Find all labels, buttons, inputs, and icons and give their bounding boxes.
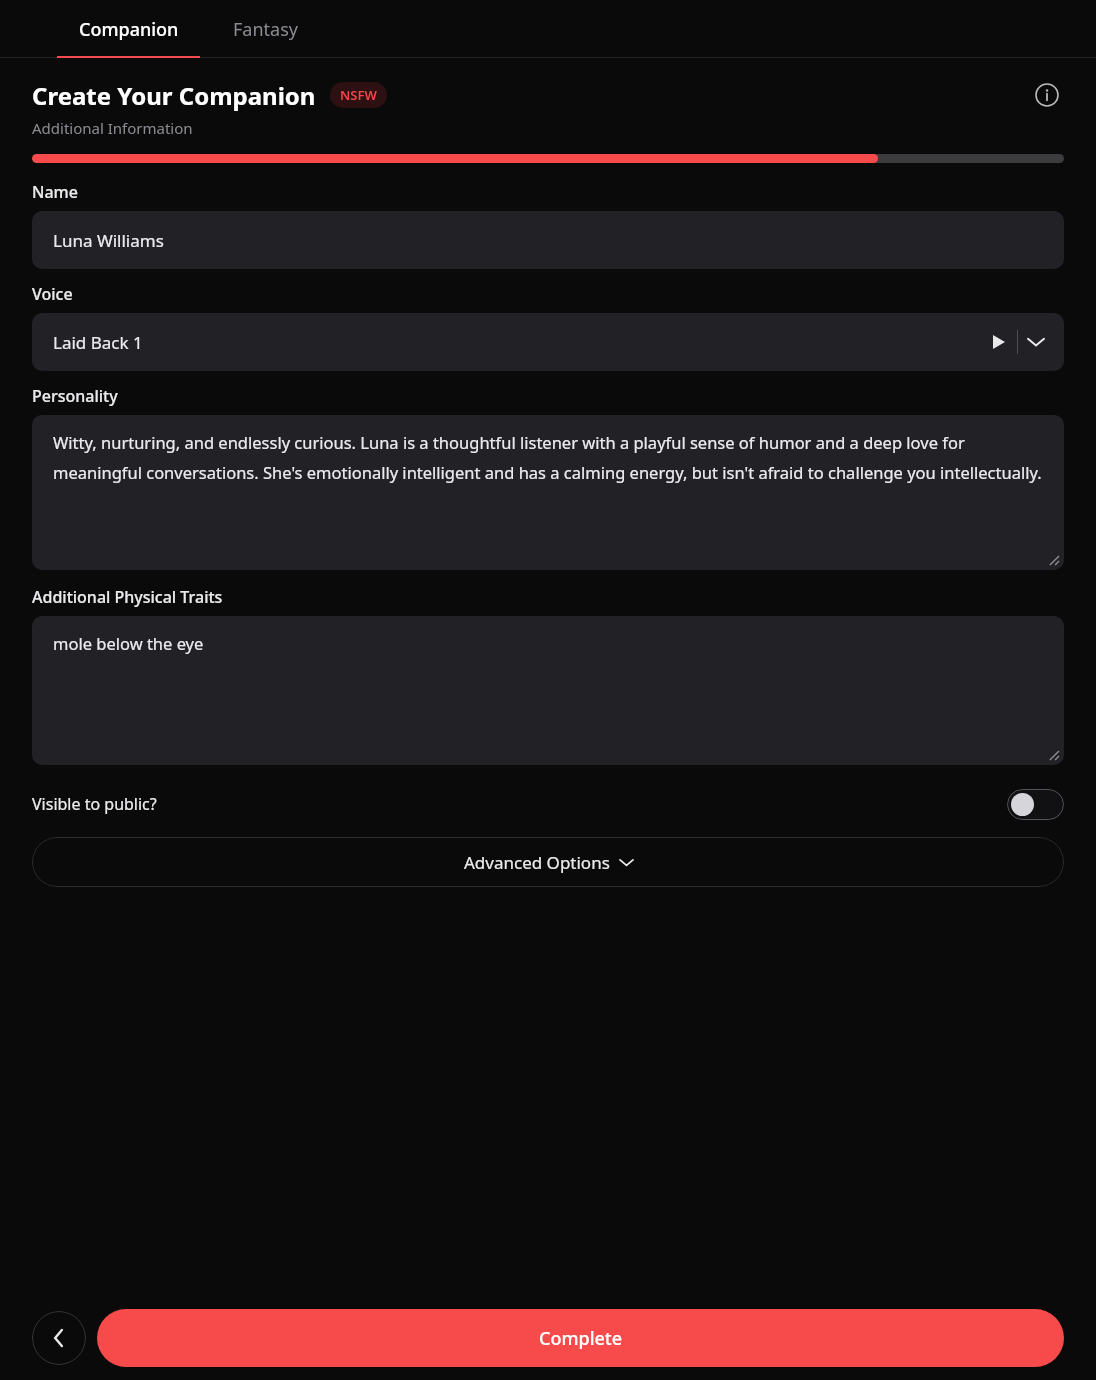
staticText: Create Your Companion [32, 79, 316, 112]
button[interactable]: Back [32, 1311, 86, 1365]
staticText: NSFW [340, 86, 377, 104]
button[interactable]: Play voice [981, 324, 1017, 360]
button[interactable]: Companion [57, 0, 200, 58]
staticText: Fantasy [233, 17, 298, 42]
staticText: Advanced Options [464, 851, 610, 874]
button[interactable]: NSFW [330, 82, 387, 108]
staticText: Laid Back 1 [53, 331, 143, 354]
staticText: mole below the eye [53, 632, 204, 654]
button[interactable]: Advanced Options [32, 837, 1064, 887]
button[interactable]: Expand voice list [1018, 324, 1054, 360]
button[interactable]: Complete [97, 1309, 1064, 1367]
staticText: Witty, nurturing, and endlessly curious.… [53, 431, 1042, 484]
staticText: Luna Williams [53, 229, 164, 252]
staticText: Additional Physical Traits [32, 586, 223, 608]
staticText: Name [32, 181, 78, 203]
staticText: Personality [32, 385, 118, 407]
button[interactable]: Fantasy [200, 0, 330, 58]
button[interactable]: Visible to public toggle [1007, 789, 1064, 820]
button[interactable]: Laid Back 1 [32, 313, 1064, 371]
staticText: Companion [79, 17, 179, 42]
staticText: Voice [32, 283, 73, 305]
button[interactable]: Luna Williams [32, 211, 1064, 269]
staticText: Visible to public? [32, 793, 157, 815]
button[interactable]: mole below the eye [32, 616, 1064, 765]
button[interactable]: Witty, nurturing, and endlessly curious.… [32, 415, 1064, 570]
staticText: Complete [539, 1326, 623, 1351]
staticText: Additional Information [32, 118, 193, 138]
button[interactable]: Information [1030, 78, 1064, 112]
